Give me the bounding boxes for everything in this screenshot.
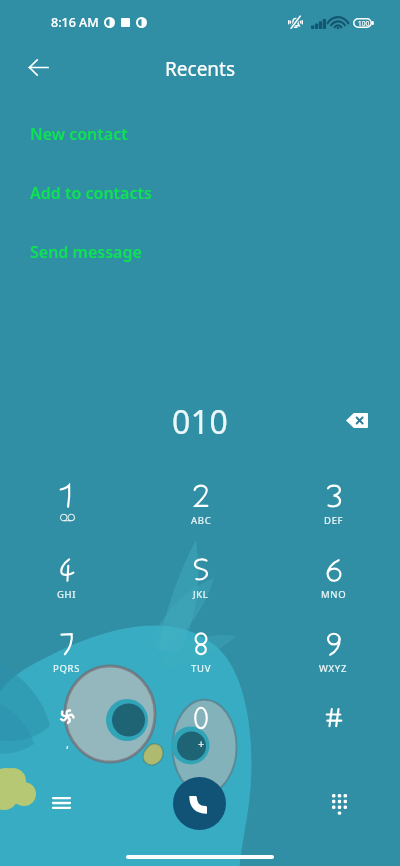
staticText: Recents bbox=[165, 56, 236, 82]
button[interactable]: GHI bbox=[0, 551, 134, 625]
button[interactable]: ABC bbox=[134, 477, 267, 551]
button[interactable]: PQRS bbox=[0, 625, 134, 699]
staticText: ABC bbox=[191, 514, 212, 527]
staticText: 010 bbox=[172, 400, 229, 444]
button[interactable]: Call history bbox=[40, 782, 82, 824]
staticText: MNO bbox=[321, 588, 347, 601]
staticText: Send message bbox=[30, 241, 142, 263]
button[interactable] bbox=[267, 699, 400, 773]
staticText: TUV bbox=[191, 662, 212, 675]
button[interactable]: , bbox=[0, 699, 134, 773]
button[interactable]: JKL bbox=[134, 551, 267, 625]
staticText: JKL bbox=[193, 588, 209, 601]
button[interactable]: WXYZ bbox=[267, 625, 400, 699]
staticText: PQRS bbox=[53, 662, 81, 675]
button[interactable]: + bbox=[134, 699, 267, 773]
button[interactable]: New contact bbox=[0, 104, 400, 163]
button[interactable]: MNO bbox=[267, 551, 400, 625]
staticText: Add to contacts bbox=[30, 182, 152, 204]
button[interactable]: Back bbox=[16, 45, 60, 89]
button[interactable]: Add to contacts bbox=[0, 163, 400, 222]
staticText: , bbox=[66, 736, 69, 751]
staticText: DEF bbox=[324, 514, 344, 527]
button[interactable]: Dialpad bbox=[318, 782, 360, 824]
button[interactable]: Call bbox=[173, 777, 226, 830]
staticText: 8:16 AM bbox=[51, 14, 99, 31]
staticText: New contact bbox=[30, 123, 128, 145]
staticText: 100 bbox=[358, 19, 370, 28]
button[interactable]: Send message bbox=[0, 222, 400, 281]
staticText: WXYZ bbox=[319, 662, 348, 675]
button[interactable]: Backspace bbox=[334, 398, 379, 443]
staticText: GHI bbox=[57, 588, 77, 601]
button[interactable] bbox=[0, 477, 134, 551]
staticText: + bbox=[198, 736, 205, 751]
button[interactable]: DEF bbox=[267, 477, 400, 551]
button[interactable]: TUV bbox=[134, 625, 267, 699]
